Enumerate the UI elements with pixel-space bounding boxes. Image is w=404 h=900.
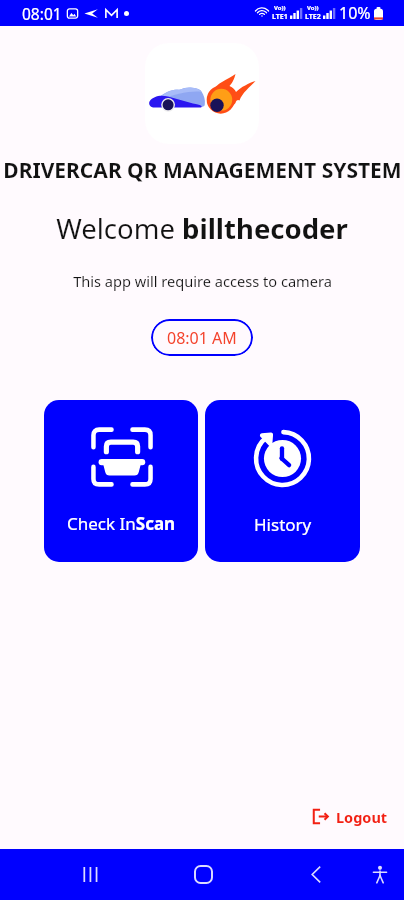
staticText: Vo)) — [307, 4, 319, 12]
staticText: 10% — [339, 2, 371, 24]
staticText: 08:01 — [22, 3, 62, 24]
staticText: 08:01 AM — [167, 327, 237, 349]
button[interactable]: History — [205, 400, 360, 562]
button[interactable]: Logout — [310, 806, 388, 827]
staticText: Check InScan — [67, 512, 176, 535]
staticText: Logout — [336, 807, 388, 827]
staticText: DRIVERCAR QR MANAGEMENT SYSTEM — [3, 156, 402, 185]
staticText: This app will require access to camera — [73, 271, 332, 291]
button[interactable]: Back — [284, 849, 348, 900]
button[interactable]: Home — [171, 849, 235, 900]
button[interactable]: Check InScan — [44, 400, 198, 562]
staticText: LTE1 — [272, 12, 288, 22]
button[interactable]: Recent apps — [58, 849, 122, 900]
staticText: Welcome billthecoder — [56, 210, 348, 247]
staticText: History — [254, 513, 312, 536]
staticText: LTE2 — [305, 12, 321, 22]
button[interactable]: Accessibility — [348, 849, 404, 900]
button[interactable]: 08:01 AM — [151, 319, 253, 356]
staticText: Vo)) — [274, 4, 286, 12]
